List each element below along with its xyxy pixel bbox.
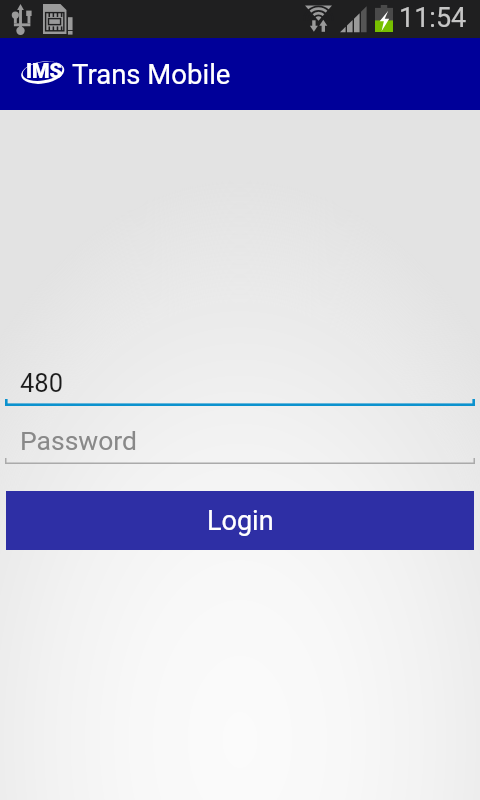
staticText: 480 xyxy=(20,368,63,398)
button[interactable]: 480 xyxy=(0,355,480,406)
button[interactable]: Password xyxy=(0,414,480,464)
staticText: Trans Mobile xyxy=(72,58,231,90)
button[interactable]: Login xyxy=(6,491,474,550)
staticText: Password xyxy=(20,425,138,456)
staticText: IMS xyxy=(26,59,63,82)
staticText: Login xyxy=(207,505,274,537)
staticText: 11:54 xyxy=(399,2,467,34)
